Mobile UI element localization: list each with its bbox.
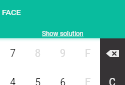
- staticText: 6: [60, 77, 66, 85]
- button[interactable]: Show solution: [42, 30, 84, 38]
- button[interactable]: E: [75, 68, 100, 85]
- staticText: E: [85, 77, 91, 85]
- staticText: C: [109, 77, 116, 85]
- button[interactable]: F: [75, 39, 100, 68]
- button[interactable]: 4: [0, 68, 25, 85]
- staticText: 5: [35, 77, 41, 85]
- button[interactable]: C: [100, 68, 125, 85]
- button[interactable]: 5: [25, 68, 50, 85]
- staticText: 9: [60, 48, 66, 60]
- staticText: Show solution: [42, 30, 84, 38]
- button[interactable]: 6: [50, 68, 75, 85]
- button[interactable]: 8: [25, 39, 50, 68]
- staticText: 4: [10, 77, 16, 85]
- button[interactable]: Backspace: [100, 39, 125, 68]
- staticText: 7: [10, 48, 16, 60]
- button[interactable]: 9: [50, 39, 75, 68]
- staticText: FACE: [2, 8, 21, 17]
- staticText: F: [85, 48, 91, 60]
- button[interactable]: 7: [0, 39, 25, 68]
- staticText: 8: [35, 48, 41, 60]
